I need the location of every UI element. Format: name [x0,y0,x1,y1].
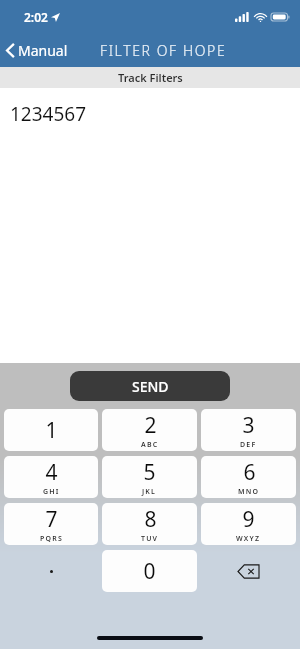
staticText: 7 [45,505,58,534]
staticText: 9 [242,505,255,534]
button[interactable]: 7 [4,503,98,545]
button[interactable]: SEND [70,371,230,401]
staticText: 0 [143,557,156,586]
staticText: TUV [141,534,159,544]
button[interactable]: 2 [102,409,197,451]
staticText: 1 [45,416,58,445]
button[interactable]: 9 [201,503,296,545]
staticText: 2:02 [24,9,48,25]
button[interactable]: 3 [201,409,296,451]
staticText: GHI [43,487,60,497]
staticText: 5 [143,458,156,487]
button[interactable]: Period [4,550,98,592]
staticText: Track Filters [118,70,183,85]
staticText: 3 [242,411,255,440]
button[interactable]: Manual [0,37,76,64]
staticText: JKL [142,487,157,497]
staticText: FILTER OF HOPE [100,41,227,60]
staticText: 1234567 [10,101,87,127]
staticText: PQRS [40,534,63,544]
staticText: 2 [144,411,157,440]
staticText: ABC [141,440,159,450]
button[interactable]: 5 [102,456,197,498]
staticText: 6 [243,458,256,487]
button[interactable]: 8 [102,503,197,545]
staticText: 4 [45,458,58,487]
staticText: Manual [18,41,68,60]
staticText: 8 [144,505,157,534]
button[interactable]: 1 [4,409,98,451]
button[interactable]: 0 [102,550,197,592]
button[interactable]: 6 [201,456,296,498]
staticText: WXYZ [236,534,261,544]
staticText: DEF [240,440,257,450]
button[interactable]: Delete [201,550,296,592]
staticText: SEND [132,377,169,396]
button[interactable]: 4 [4,456,98,498]
staticText: MNO [238,487,260,497]
